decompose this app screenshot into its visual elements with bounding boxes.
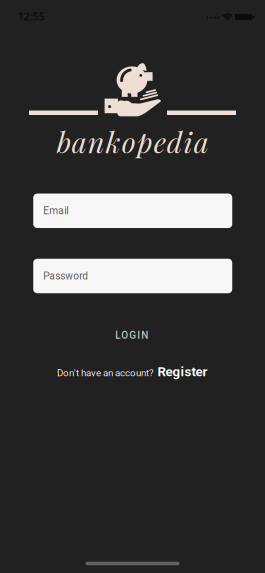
button[interactable]: Register (158, 364, 208, 379)
staticText: Email (43, 205, 68, 217)
staticText: bankopedia (57, 122, 209, 160)
button[interactable]: LOGIN (103, 324, 161, 346)
staticText: 12:55 (17, 9, 44, 24)
button[interactable]: Password (33, 259, 232, 293)
staticText: LOGIN (115, 329, 148, 341)
button[interactable]: Email (33, 194, 232, 228)
staticText: Don't have an account? (57, 367, 154, 379)
staticText: Register (158, 364, 208, 379)
staticText: Password (43, 270, 88, 282)
